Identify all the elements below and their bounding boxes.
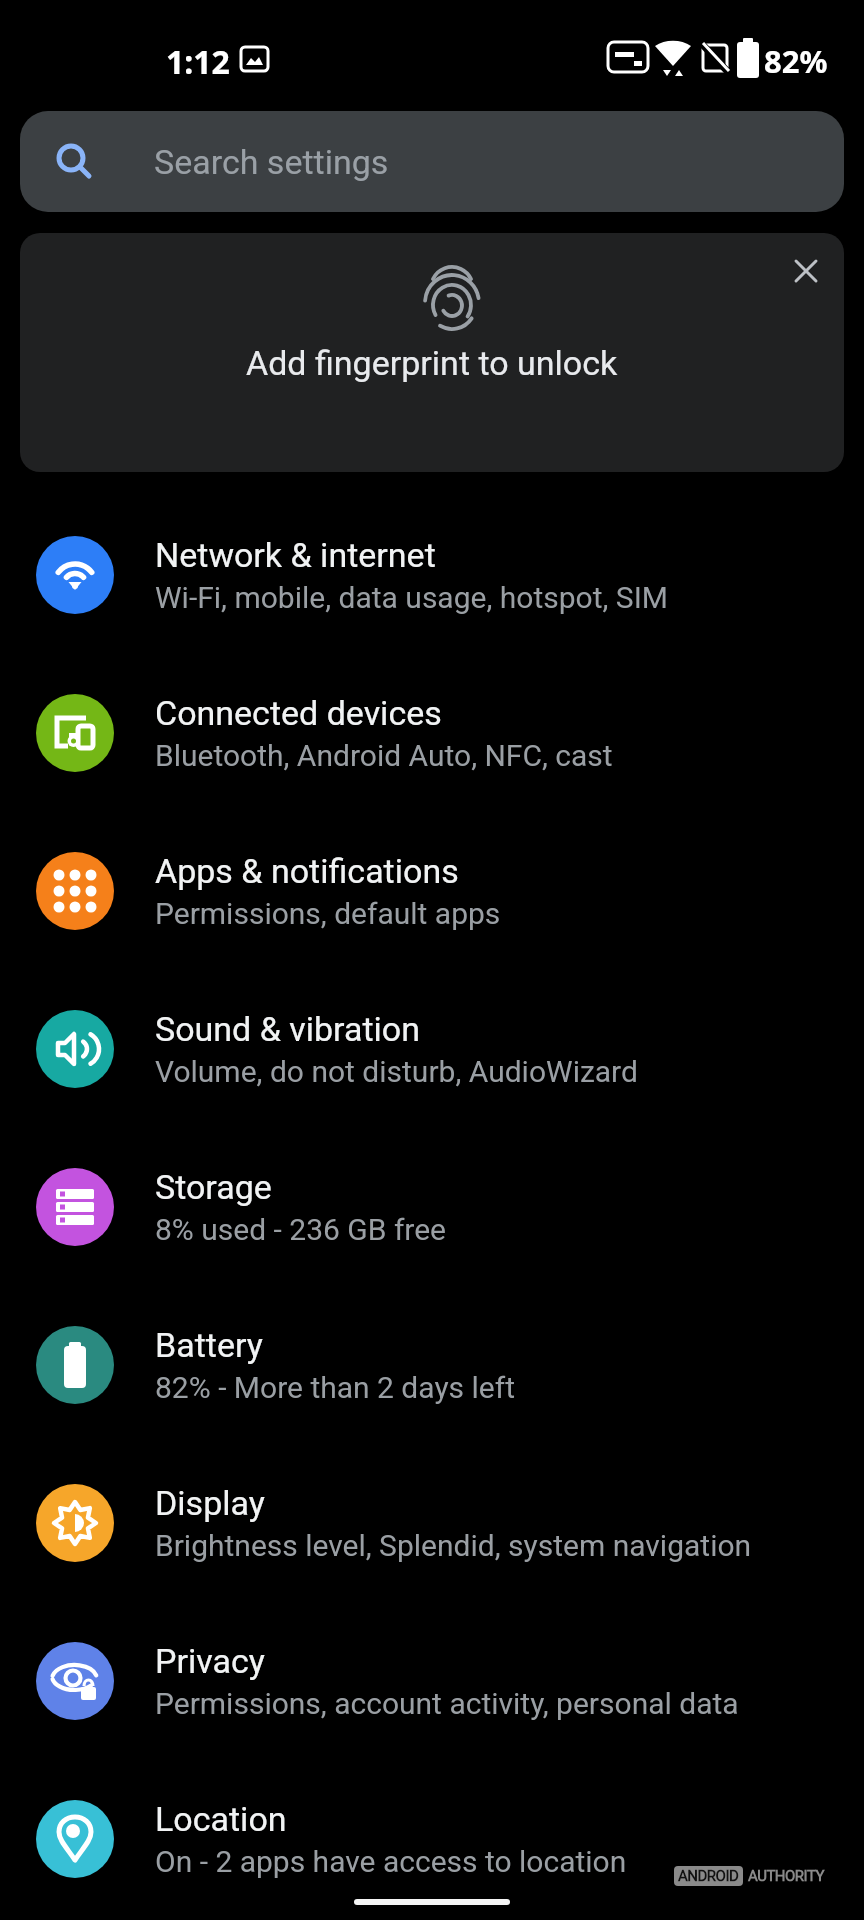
staticText: AUTHORITY [748,1867,825,1885]
staticText: On - 2 apps have access to location [155,1844,627,1879]
button[interactable]: Display [0,1444,864,1602]
staticText: 8% used - 236 GB free [155,1212,447,1247]
button[interactable]: Add fingerprint to unlock [20,233,844,472]
button[interactable] [794,259,818,283]
staticText: 1:12 [166,40,230,84]
staticText: Bluetooth, Android Auto, NFC, cast [155,738,613,773]
staticText: Add fingerprint to unlock [246,343,618,383]
staticText: Connected devices [155,693,442,733]
staticText: Location [155,1799,287,1839]
button[interactable]: Location [0,1760,864,1918]
button[interactable]: Battery [0,1286,864,1444]
staticText: Storage [155,1167,272,1207]
button[interactable]: Network & internet [0,496,864,654]
staticText: 82% - More than 2 days left [155,1370,515,1405]
button[interactable]: Privacy [0,1602,864,1760]
button[interactable]: Connected devices [0,654,864,812]
staticText: Search settings [154,142,389,182]
staticText: ANDROID [678,1867,739,1885]
staticText: Permissions, default apps [155,896,501,931]
staticText: Display [155,1483,265,1523]
staticText: Brightness level, Splendid, system navig… [155,1528,752,1563]
staticText: 82% [764,40,828,82]
staticText: Volume, do not disturb, AudioWizard [155,1054,638,1089]
button[interactable]: Storage [0,1128,864,1286]
button[interactable]: Apps & notifications [0,812,864,970]
staticText: Privacy [155,1641,265,1681]
button[interactable]: Sound & vibration [0,970,864,1128]
button[interactable]: Search settings [20,111,844,212]
staticText: Wi-Fi, mobile, data usage, hotspot, SIM [155,580,668,615]
staticText: Network & internet [155,535,436,575]
staticText: Apps & notifications [155,851,459,891]
staticText: Sound & vibration [155,1009,421,1049]
staticText: Battery [155,1325,263,1365]
staticText: Permissions, account activity, personal … [155,1686,739,1721]
